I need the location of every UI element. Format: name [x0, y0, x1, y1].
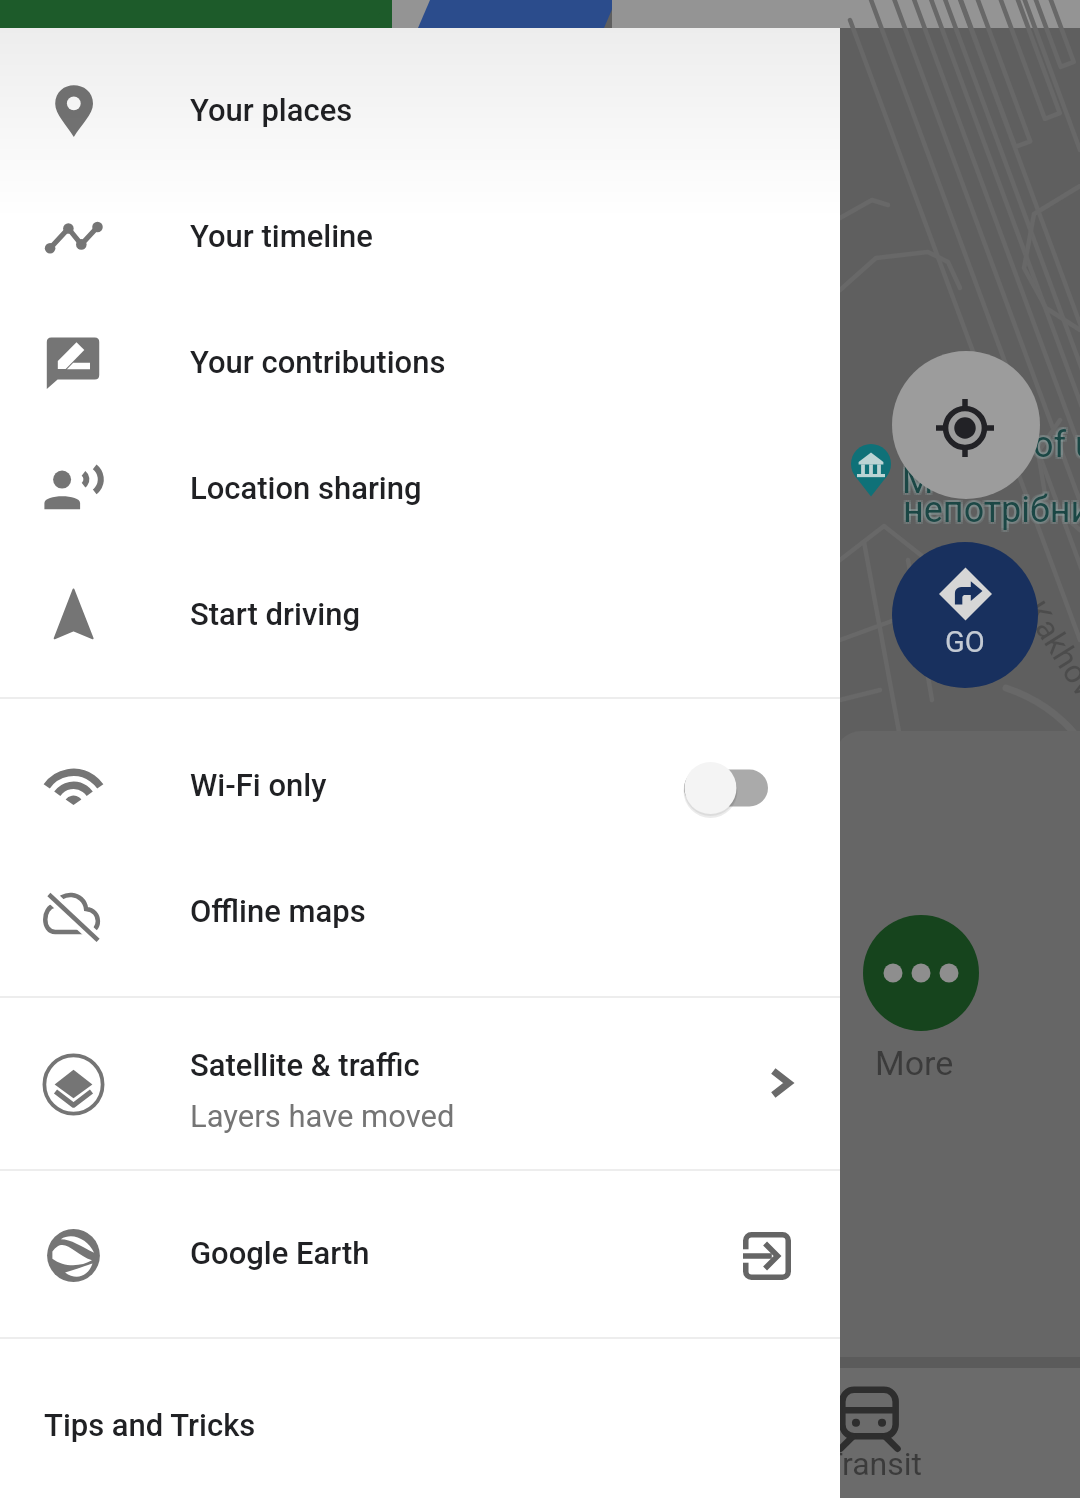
staticText: of us [1035, 422, 1080, 464]
staticText: Location sharing [190, 470, 422, 506]
staticText: of us [1031, 422, 1080, 464]
staticText: Google Earth [190, 1235, 370, 1271]
staticText: Layers have moved [190, 1098, 455, 1134]
staticText: M [904, 462, 936, 504]
staticText: Start driving [190, 596, 360, 632]
staticText: M [904, 460, 936, 502]
staticText: непотрібних реч [905, 489, 1080, 531]
staticText: Kakhov [1017, 594, 1080, 704]
staticText: of us [1033, 422, 1080, 464]
staticText: More [875, 1043, 954, 1083]
button[interactable]: Your contributions [0, 302, 840, 428]
staticText: непотрібних реч [901, 489, 1080, 531]
staticText: непотрібних реч [903, 491, 1080, 533]
button[interactable]: Your places [0, 50, 840, 176]
staticText: непотрібних реч [901, 487, 1080, 529]
staticText: M [900, 462, 932, 504]
staticText: Satellite & traffic [190, 1047, 420, 1083]
staticText: Your timeline [190, 218, 373, 254]
staticText: M [900, 460, 932, 502]
staticText: M [902, 462, 934, 504]
staticText: of us [1035, 424, 1080, 466]
staticText: Wi-Fi only [190, 767, 327, 803]
staticText: Your places [190, 92, 353, 128]
other: More [875, 1043, 954, 1083]
staticText: непотрібних реч [905, 487, 1080, 529]
staticText: of us [1033, 424, 1080, 466]
button[interactable]: Tips and Tricks [0, 1362, 840, 1488]
staticText: M [904, 458, 936, 500]
staticText: M [902, 458, 934, 500]
staticText: Tips and Tricks [44, 1407, 256, 1443]
other: Open Google Earth [743, 1232, 791, 1280]
other: Start navigation [945, 625, 985, 659]
staticText: непотрібних реч [903, 489, 1080, 531]
staticText: непотрібних реч [905, 491, 1080, 533]
staticText: Offline maps [190, 893, 366, 929]
button[interactable]: Start driving [0, 554, 840, 680]
other: Open layers [769, 1068, 805, 1098]
other: Wi-Fi only toggle [681, 758, 771, 818]
button[interactable]: Location sharing [0, 428, 840, 554]
other: Transit tab [824, 1445, 922, 1483]
staticText: непотрібних реч [901, 491, 1080, 533]
staticText: M [900, 458, 932, 500]
staticText: Your contributions [190, 344, 446, 380]
staticText: of us [1031, 424, 1080, 466]
button[interactable]: Google Earth [0, 1193, 840, 1319]
staticText: Transit [824, 1445, 922, 1483]
button[interactable]: Your timeline [0, 176, 840, 302]
staticText: of us [1035, 426, 1080, 468]
button[interactable]: Wi-Fi only [0, 725, 840, 851]
button[interactable]: Satellite & traffic [0, 1013, 840, 1173]
staticText: of us [1031, 426, 1080, 468]
staticText: of us [1033, 426, 1080, 468]
staticText: непотрібних реч [903, 487, 1080, 529]
staticText: Zo [945, 645, 994, 694]
staticText: GO [945, 625, 985, 659]
button[interactable]: Offline maps [0, 851, 840, 977]
staticText: M [902, 460, 934, 502]
